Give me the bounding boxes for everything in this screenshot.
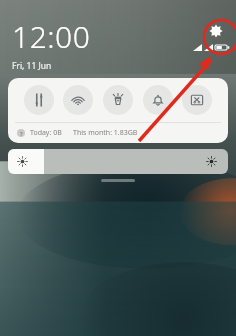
button[interactable]: Settings [205,20,227,42]
button[interactable]: ? [8,123,228,143]
button[interactable]: Wi-Fi [63,85,93,115]
button[interactable]: Brightness [8,149,228,174]
staticText: Fri, 11 Jun [12,60,52,70]
button[interactable]: Flashlight [103,85,133,115]
staticText: Today: 0B [30,128,62,138]
button[interactable]: Mobile data [24,85,54,115]
button[interactable]: Screenshot [182,85,212,115]
staticText: ? [20,130,23,137]
staticText: 12:00 [12,16,91,57]
button[interactable]: Do not disturb [143,85,173,115]
staticText: This month: 1.83GB [73,128,138,138]
button[interactable]: Expand panel [101,179,135,182]
